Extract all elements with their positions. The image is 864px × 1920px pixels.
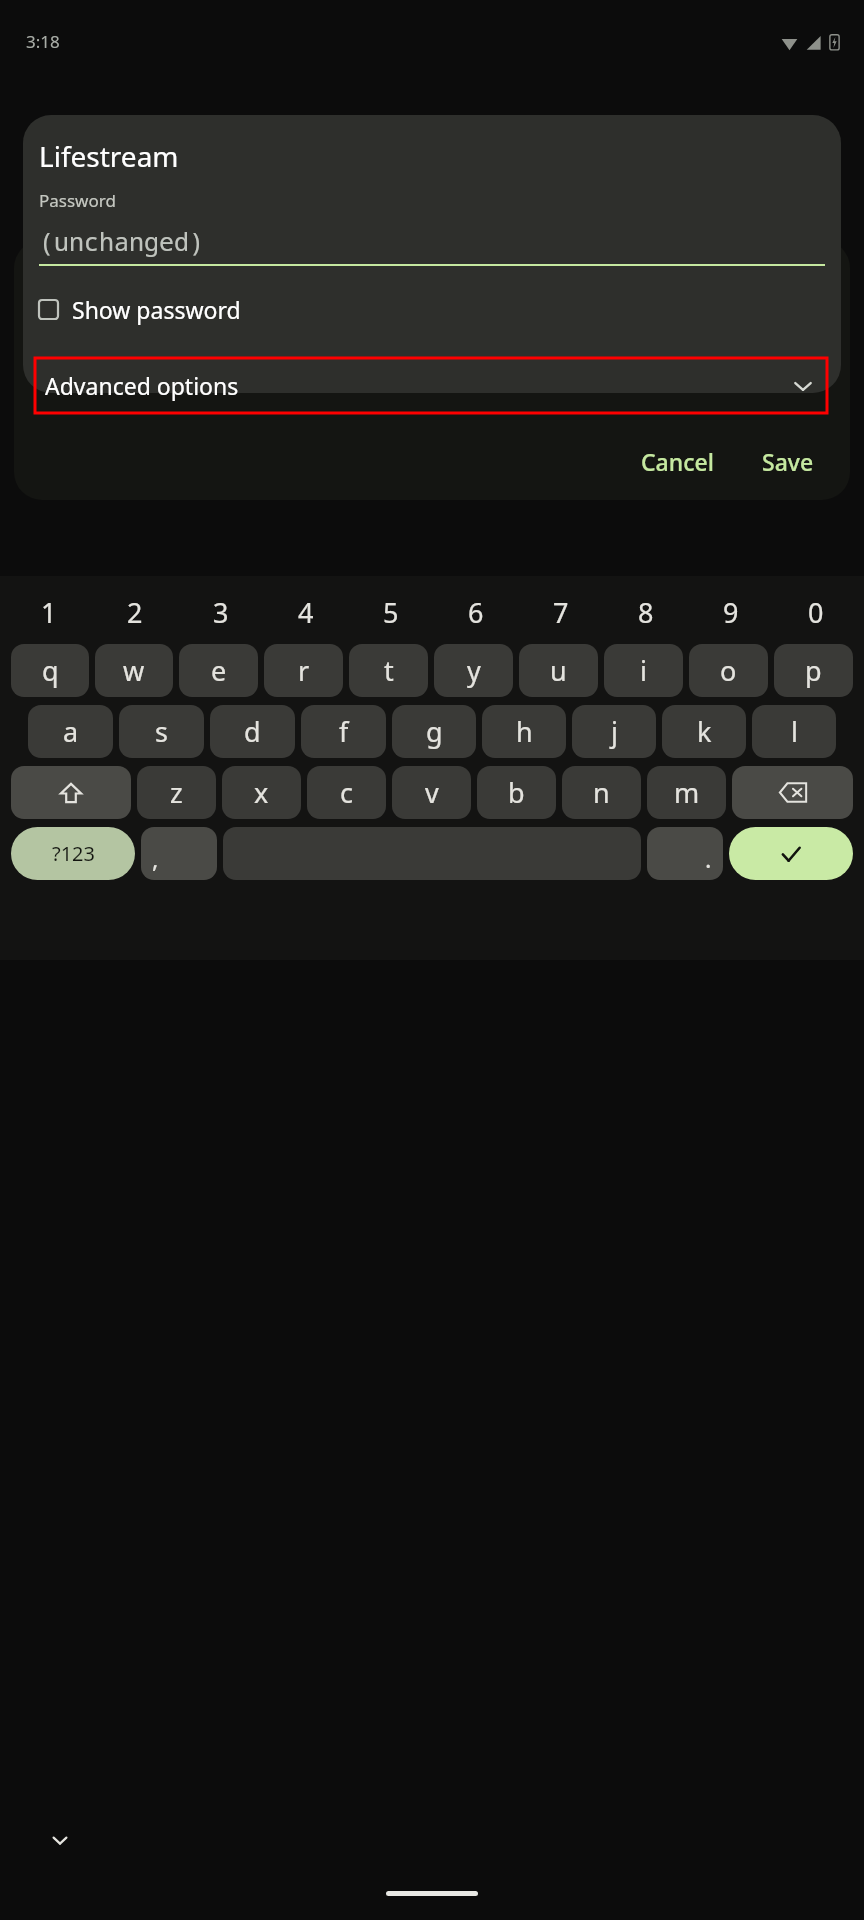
button[interactable]: Show password <box>39 292 825 326</box>
staticText: ?123 <box>52 840 95 867</box>
button[interactable]: p <box>774 644 853 697</box>
staticText: 3:18 <box>26 30 60 53</box>
button[interactable]: k <box>662 705 746 758</box>
staticText: Show password <box>72 294 241 325</box>
button[interactable]: Hide keyboard <box>38 1818 82 1862</box>
button[interactable]: . <box>647 827 723 880</box>
button[interactable]: 3 <box>178 586 263 638</box>
staticText: Save <box>762 446 814 477</box>
staticText: n <box>593 774 610 811</box>
staticText: f <box>339 713 349 750</box>
staticText: r <box>298 652 310 689</box>
button[interactable]: Done <box>729 827 853 880</box>
button[interactable]: q <box>11 644 89 697</box>
button[interactable]: 7 <box>518 586 603 638</box>
staticText: 5 <box>383 594 399 631</box>
button[interactable]: u <box>519 644 598 697</box>
staticText: 0 <box>808 594 824 631</box>
staticText: 4 <box>298 594 314 631</box>
button[interactable]: 4 <box>263 586 348 638</box>
button[interactable]: 0 <box>773 586 858 638</box>
button[interactable]: h <box>482 705 566 758</box>
staticText: z <box>170 774 183 811</box>
staticText: l <box>791 713 798 750</box>
button[interactable]: d <box>210 705 295 758</box>
staticText: y <box>467 652 481 689</box>
button[interactable]: 8 <box>603 586 688 638</box>
button[interactable]: w <box>95 644 173 697</box>
button[interactable]: r <box>264 644 343 697</box>
staticText: c <box>340 774 353 811</box>
button[interactable]: l <box>752 705 836 758</box>
staticText: 2 <box>127 594 143 631</box>
button[interactable]: v <box>392 766 471 819</box>
button[interactable]: b <box>477 766 556 819</box>
staticText: d <box>244 713 261 750</box>
button[interactable]: f <box>301 705 386 758</box>
staticText: m <box>674 774 700 811</box>
button[interactable]: 1 <box>6 586 92 638</box>
staticText: . <box>705 842 712 875</box>
staticText: t <box>384 652 394 689</box>
staticText: u <box>550 652 567 689</box>
staticText: , <box>152 842 159 875</box>
button[interactable]: ?123 <box>11 827 135 880</box>
button[interactable]: 6 <box>433 586 518 638</box>
button[interactable]: , <box>141 827 217 880</box>
button[interactable]: a <box>28 705 113 758</box>
staticText: g <box>426 713 443 750</box>
staticText: 8 <box>638 594 654 631</box>
button[interactable]: n <box>562 766 641 819</box>
staticText: 6 <box>468 594 484 631</box>
staticText: 3 <box>213 594 229 631</box>
staticText: 7 <box>553 594 569 631</box>
staticText: h <box>516 713 533 750</box>
staticText: j <box>611 713 618 750</box>
staticText: w <box>123 652 145 689</box>
staticText: Cancel <box>641 446 714 477</box>
button[interactable]: Space <box>223 827 641 880</box>
button[interactable]: i <box>604 644 683 697</box>
staticText: v <box>425 774 439 811</box>
button[interactable]: x <box>222 766 301 819</box>
button[interactable]: o <box>689 644 768 697</box>
button[interactable]: m <box>647 766 726 819</box>
button[interactable]: 2 <box>92 586 178 638</box>
staticText: Password <box>39 189 116 212</box>
button[interactable]: Backspace <box>732 766 853 819</box>
staticText: Lifestream <box>39 137 179 175</box>
staticText: x <box>254 774 269 811</box>
staticText: q <box>42 652 59 689</box>
staticText: e <box>211 652 227 689</box>
button[interactable]: Shift <box>11 766 131 819</box>
button[interactable]: Edit <box>790 110 850 170</box>
staticText: 1 <box>41 594 57 631</box>
staticText: i <box>640 652 647 689</box>
staticText: a <box>63 713 79 750</box>
button[interactable]: Save <box>750 438 826 485</box>
button[interactable]: 9 <box>688 586 773 638</box>
staticText: Signal strength <box>106 855 292 890</box>
staticText: Advanced options <box>45 370 239 401</box>
button[interactable]: c <box>307 766 386 819</box>
button[interactable]: z <box>137 766 216 819</box>
button[interactable]: e <box>179 644 258 697</box>
staticText: (unchanged) <box>39 224 205 258</box>
staticText: 9 <box>723 594 739 631</box>
button[interactable]: Cancel <box>629 438 726 485</box>
staticText: k <box>697 713 712 750</box>
staticText: s <box>155 713 168 750</box>
button[interactable]: g <box>392 705 476 758</box>
staticText: b <box>508 774 525 811</box>
button[interactable]: Advanced options <box>35 358 827 413</box>
staticText: p <box>805 652 822 689</box>
button[interactable]: t <box>349 644 428 697</box>
button[interactable]: Back <box>12 110 72 170</box>
staticText: o <box>720 652 737 689</box>
button[interactable]: s <box>119 705 204 758</box>
button[interactable]: 5 <box>348 586 433 638</box>
button[interactable]: j <box>572 705 656 758</box>
button[interactable]: y <box>434 644 513 697</box>
